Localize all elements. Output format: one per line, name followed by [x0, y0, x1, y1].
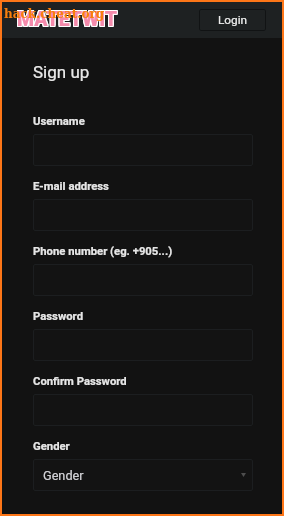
button[interactable] [33, 134, 253, 166]
staticText: MATETWIT [16, 8, 117, 31]
button[interactable]: Gender [33, 459, 253, 491]
button[interactable] [33, 329, 253, 361]
staticText: Gender [33, 440, 70, 453]
button[interactable] [33, 199, 253, 231]
staticText: hack.cheat.org [4, 7, 105, 21]
staticText: MATETWIT [17, 8, 118, 31]
button[interactable]: MATETWIT [17, 8, 118, 31]
staticText: Gender [43, 468, 84, 483]
button[interactable]: Login [199, 9, 266, 31]
staticText: MATETWIT [17, 9, 118, 32]
staticText: Password [33, 310, 83, 323]
staticText: Login [218, 13, 248, 27]
button[interactable] [33, 394, 253, 426]
staticText: MATETWIT [16, 7, 117, 30]
staticText: Confirm Password [33, 375, 127, 388]
staticText: Sign up [33, 62, 90, 82]
staticText: MATETWIT [18, 8, 119, 31]
staticText: Phone number (eg. +905...) [33, 245, 173, 258]
button[interactable] [33, 264, 253, 296]
staticText: E-mail address [33, 180, 109, 193]
staticText: MATETWIT [18, 7, 119, 30]
staticText: Username [33, 115, 85, 128]
staticText: MATETWIT [17, 7, 118, 30]
staticText: MATETWIT [18, 9, 119, 32]
other: Select gender [241, 473, 246, 477]
staticText: MATETWIT [16, 9, 117, 32]
